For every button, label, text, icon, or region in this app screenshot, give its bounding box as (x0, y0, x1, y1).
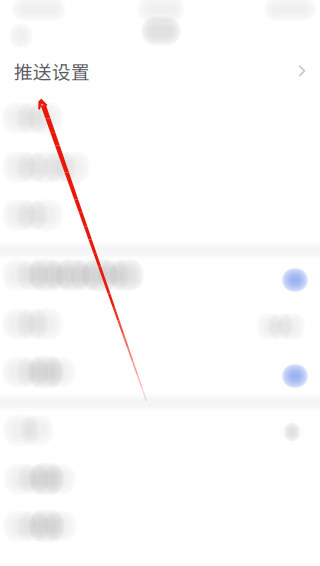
button[interactable]: 推送设置 (0, 47, 320, 94)
staticText: 推送设置 (14, 57, 90, 84)
